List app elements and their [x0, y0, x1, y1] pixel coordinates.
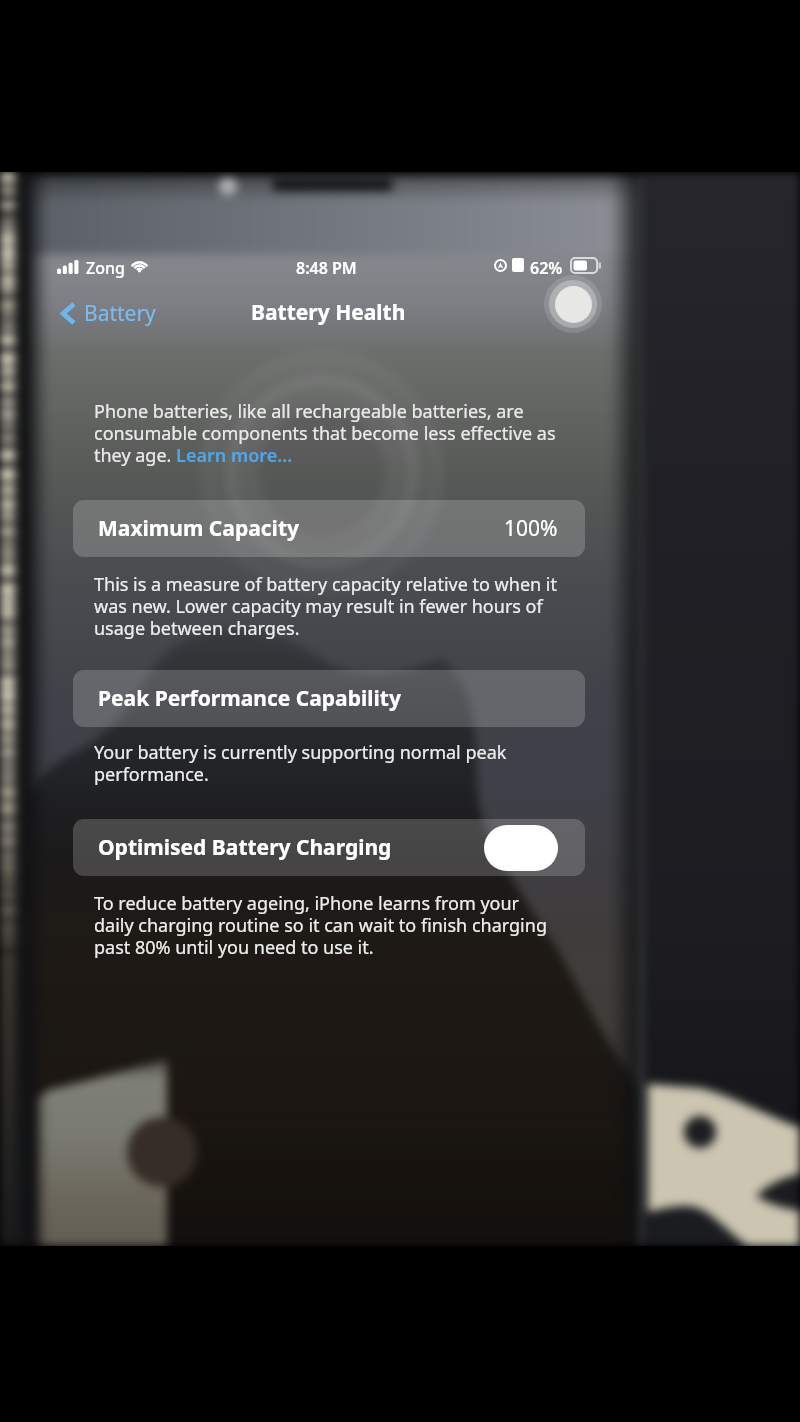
staticText: 100% [504, 514, 558, 543]
staticText: Optimised Battery Charging [98, 833, 392, 862]
button[interactable]: Battery [60, 296, 156, 330]
staticText: This is a measure of battery capacity re… [94, 572, 560, 641]
staticText: 8:48 PM [296, 257, 357, 279]
button[interactable]: Maximum Capacity [73, 500, 585, 557]
button[interactable]: AssistiveTouch [543, 274, 603, 334]
staticText: Zong [86, 257, 125, 279]
staticText: To reduce battery ageing, iPhone learns … [94, 891, 560, 960]
staticText: Battery Health [251, 298, 406, 327]
staticText: Maximum Capacity [98, 514, 299, 543]
button[interactable]: Peak Performance Capability [73, 670, 585, 727]
staticText: Phone batteries, like all rechargeable b… [94, 399, 560, 468]
button[interactable]: Optimised Battery Charging toggle [484, 825, 558, 871]
staticText: Peak Performance Capability [98, 684, 401, 713]
staticText: Your battery is currently supporting nor… [94, 740, 560, 787]
button[interactable]: Optimised Battery Charging [73, 819, 585, 876]
staticText: 62% [530, 257, 563, 279]
staticText: Battery [84, 299, 156, 328]
